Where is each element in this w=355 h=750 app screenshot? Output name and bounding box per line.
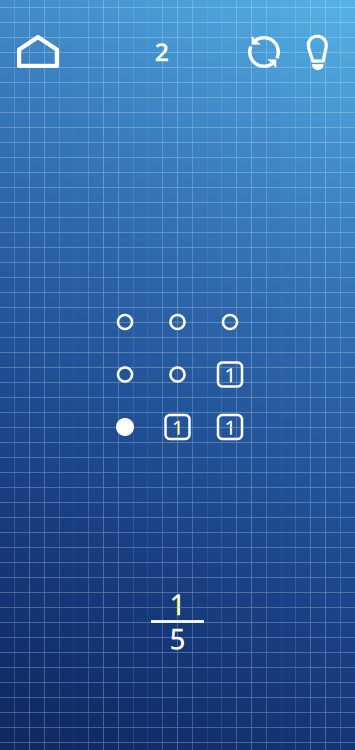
button[interactable]: Empty cell row 2 column 2	[160, 357, 194, 391]
staticText: 5	[169, 620, 185, 658]
button[interactable]: Empty cell row 1 column 2	[160, 305, 194, 339]
button[interactable]: Home	[8, 25, 68, 77]
staticText: 1	[224, 361, 235, 388]
button[interactable]: 1	[213, 410, 247, 444]
staticText: 1	[169, 586, 185, 623]
staticText: 1	[172, 414, 183, 440]
button[interactable]: 1	[213, 357, 247, 391]
button[interactable]: Hint	[297, 26, 337, 78]
button[interactable]: Empty cell row 2 column 1	[108, 357, 142, 391]
button[interactable]: Empty cell row 1 column 1	[108, 305, 142, 339]
button[interactable]: Restart	[242, 26, 286, 78]
staticText: 2	[154, 35, 168, 68]
button[interactable]: Empty cell row 1 column 3	[213, 305, 247, 339]
staticText: 1	[224, 414, 235, 440]
button[interactable]: Filled cell row 3 column 1	[108, 410, 142, 444]
button[interactable]: 1	[160, 410, 194, 444]
